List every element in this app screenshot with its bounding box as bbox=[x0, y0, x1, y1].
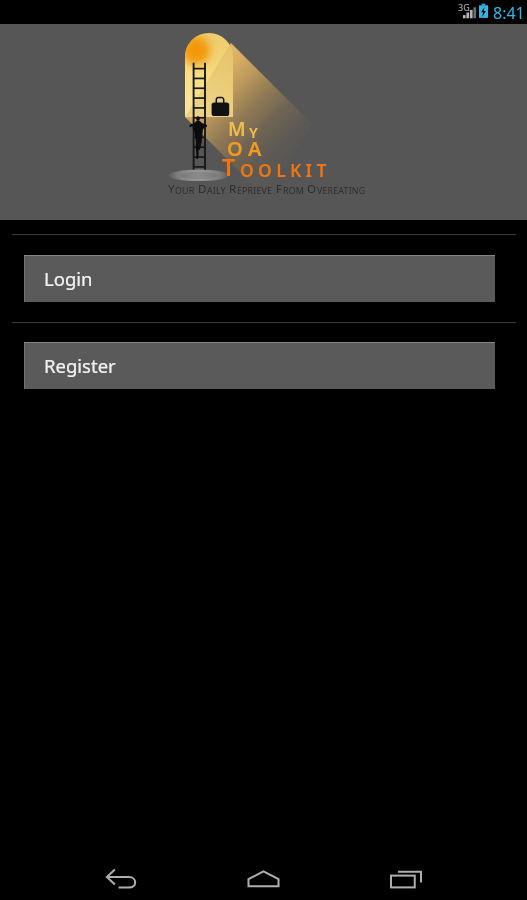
staticText: EPRIEVE bbox=[237, 185, 273, 197]
staticText: Register bbox=[44, 353, 116, 378]
staticText: ROM bbox=[283, 185, 304, 197]
staticText: O bbox=[307, 181, 317, 197]
staticText: F bbox=[276, 181, 283, 197]
staticText: 3G bbox=[458, 1, 470, 13]
staticText: Y bbox=[168, 181, 175, 197]
staticText: OUR bbox=[175, 185, 195, 197]
staticText: Y bbox=[249, 122, 261, 142]
button[interactable]: Recent apps bbox=[334, 848, 476, 900]
staticText: D bbox=[198, 181, 207, 197]
staticText: OOLKIT bbox=[240, 158, 331, 182]
staticText: Login bbox=[44, 266, 93, 291]
staticText: AILY bbox=[207, 185, 226, 197]
staticText: 8:41 bbox=[493, 2, 525, 24]
staticText: A bbox=[248, 135, 267, 162]
staticText: M bbox=[228, 116, 249, 142]
staticText: T bbox=[222, 151, 240, 182]
button[interactable]: Home bbox=[192, 848, 334, 900]
staticText: O bbox=[227, 135, 248, 162]
button[interactable]: Login bbox=[24, 255, 495, 302]
button[interactable]: Register bbox=[24, 342, 495, 389]
staticText: R bbox=[229, 181, 237, 197]
button[interactable]: Back bbox=[50, 848, 192, 900]
staticText: VEREATING bbox=[317, 185, 366, 197]
